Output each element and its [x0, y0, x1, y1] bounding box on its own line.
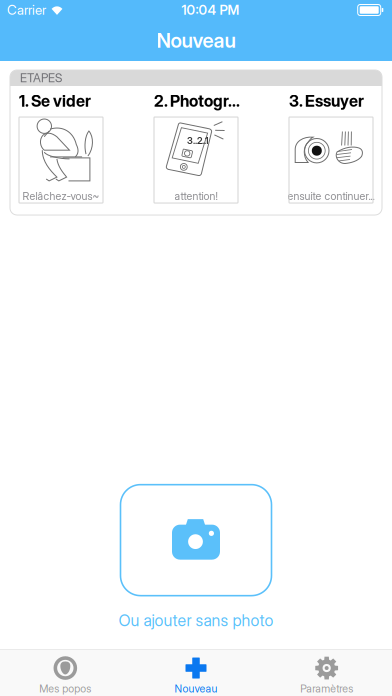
staticText: Relâchez-vous~ [22, 189, 99, 202]
staticText: Nouveau [156, 28, 235, 53]
staticText: Paramètres [300, 682, 353, 695]
staticText: 3. Essuyer [289, 91, 364, 111]
staticText: 3..2..1 [187, 135, 209, 146]
staticText: attention! [174, 189, 217, 202]
staticText: 2. Photogr... [154, 91, 240, 111]
staticText: ETAPES [20, 71, 62, 85]
staticText: Nouveau [174, 682, 217, 695]
button[interactable]: Take photo [120, 485, 271, 596]
staticText: 1. Se vider [19, 91, 91, 111]
button[interactable]: Ou ajouter sans photo [108, 607, 283, 634]
staticText: Carrier [7, 2, 46, 18]
button[interactable]: Nouveau [131, 647, 261, 696]
staticText: Ou ajouter sans photo [118, 611, 273, 630]
staticText: 10:04 PM [181, 2, 239, 18]
staticText: Mes popos [39, 682, 91, 695]
button[interactable]: Mes popos [0, 647, 131, 696]
staticText: ensuite continuer... [287, 189, 374, 202]
button[interactable]: Paramètres [261, 647, 392, 696]
